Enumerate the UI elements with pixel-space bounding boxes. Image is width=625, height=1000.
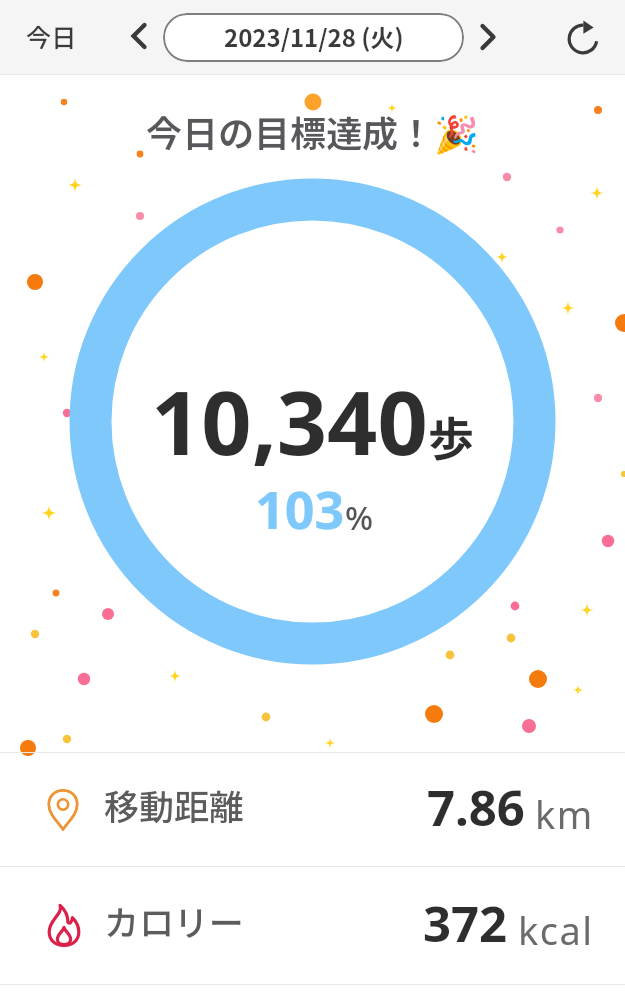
button[interactable]: 移動距離 [0,753,625,866]
staticText: % [345,495,374,540]
button[interactable]: 今日 [8,6,95,66]
button[interactable]: カロリー [0,867,625,984]
staticText: 2023/11/28 (火) [224,19,404,54]
staticText: 103 [255,473,345,544]
staticText: 372 [423,890,508,957]
staticText: カロリー [104,895,245,946]
staticText: km [535,788,594,840]
staticText: 移動距離 [104,779,245,830]
button[interactable]: Next day [464,13,512,61]
button[interactable]: 2023/11/28 (火) [163,13,464,62]
staticText: 10,340 [151,361,428,481]
staticText: 7.86 [427,774,525,841]
staticText: 今日 [26,18,77,54]
staticText: 今日の目標達成！🎉 [146,105,479,157]
button[interactable]: Previous day [115,12,163,60]
staticText: kcal [518,904,594,956]
button[interactable]: Refresh [559,14,607,62]
staticText: 歩 [428,403,474,470]
